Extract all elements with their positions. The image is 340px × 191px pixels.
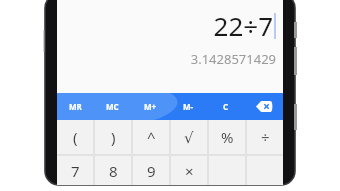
- staticText: 22÷7: [213, 8, 273, 43]
- staticText: MR: [69, 101, 82, 112]
- button[interactable]: 7: [57, 156, 93, 185]
- staticText: M+: [144, 101, 157, 112]
- staticText: M-: [183, 101, 194, 112]
- button[interactable]: ×: [171, 156, 207, 185]
- button[interactable]: ^: [133, 120, 169, 154]
- button[interactable]: ÷: [247, 120, 283, 154]
- button[interactable]: C: [207, 93, 245, 120]
- button[interactable]: %: [209, 120, 245, 154]
- staticText: √: [184, 129, 194, 146]
- button[interactable]: √: [171, 120, 207, 154]
- button[interactable]: 8: [95, 156, 131, 185]
- staticText: (: [73, 127, 78, 147]
- button[interactable]: M+: [131, 93, 169, 120]
- staticText: 9: [147, 161, 156, 181]
- staticText: 3.1428571429: [190, 50, 276, 68]
- button[interactable]: MR: [57, 93, 94, 120]
- staticText: MC: [106, 101, 119, 112]
- staticText: 7: [71, 161, 80, 181]
- button[interactable]: Backspace: [245, 93, 283, 120]
- staticText: ×: [185, 161, 194, 181]
- button[interactable]: ): [95, 120, 131, 154]
- staticText: ^: [147, 127, 156, 147]
- staticText: C: [223, 101, 229, 112]
- staticText: ÷: [261, 127, 270, 147]
- staticText: ): [111, 127, 116, 147]
- staticText: 8: [109, 161, 118, 181]
- button[interactable]: M-: [169, 93, 207, 120]
- button[interactable]: 9: [133, 156, 169, 185]
- staticText: %: [221, 127, 234, 147]
- button[interactable]: (: [57, 120, 93, 154]
- button[interactable]: MC: [94, 93, 131, 120]
